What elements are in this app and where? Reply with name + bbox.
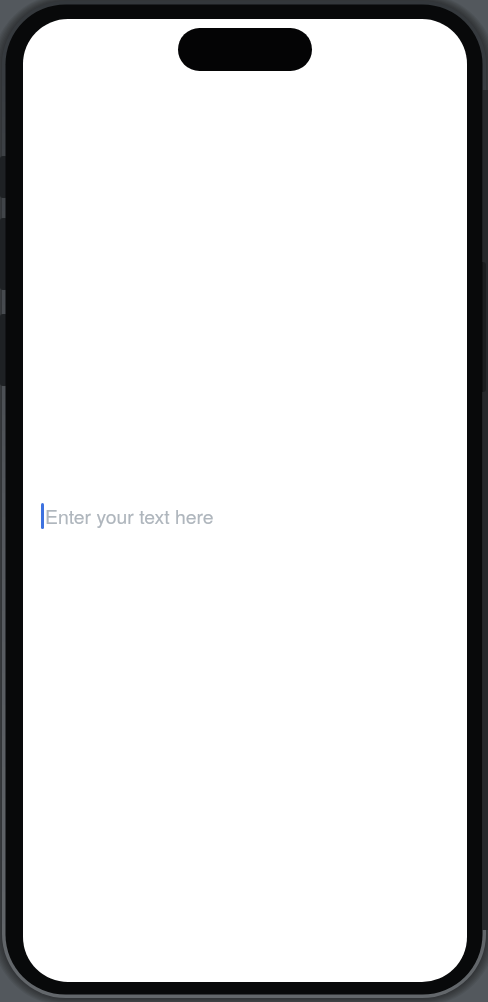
button[interactable]: Enter your text here <box>41 500 461 532</box>
staticText: Enter your text here <box>45 502 214 530</box>
